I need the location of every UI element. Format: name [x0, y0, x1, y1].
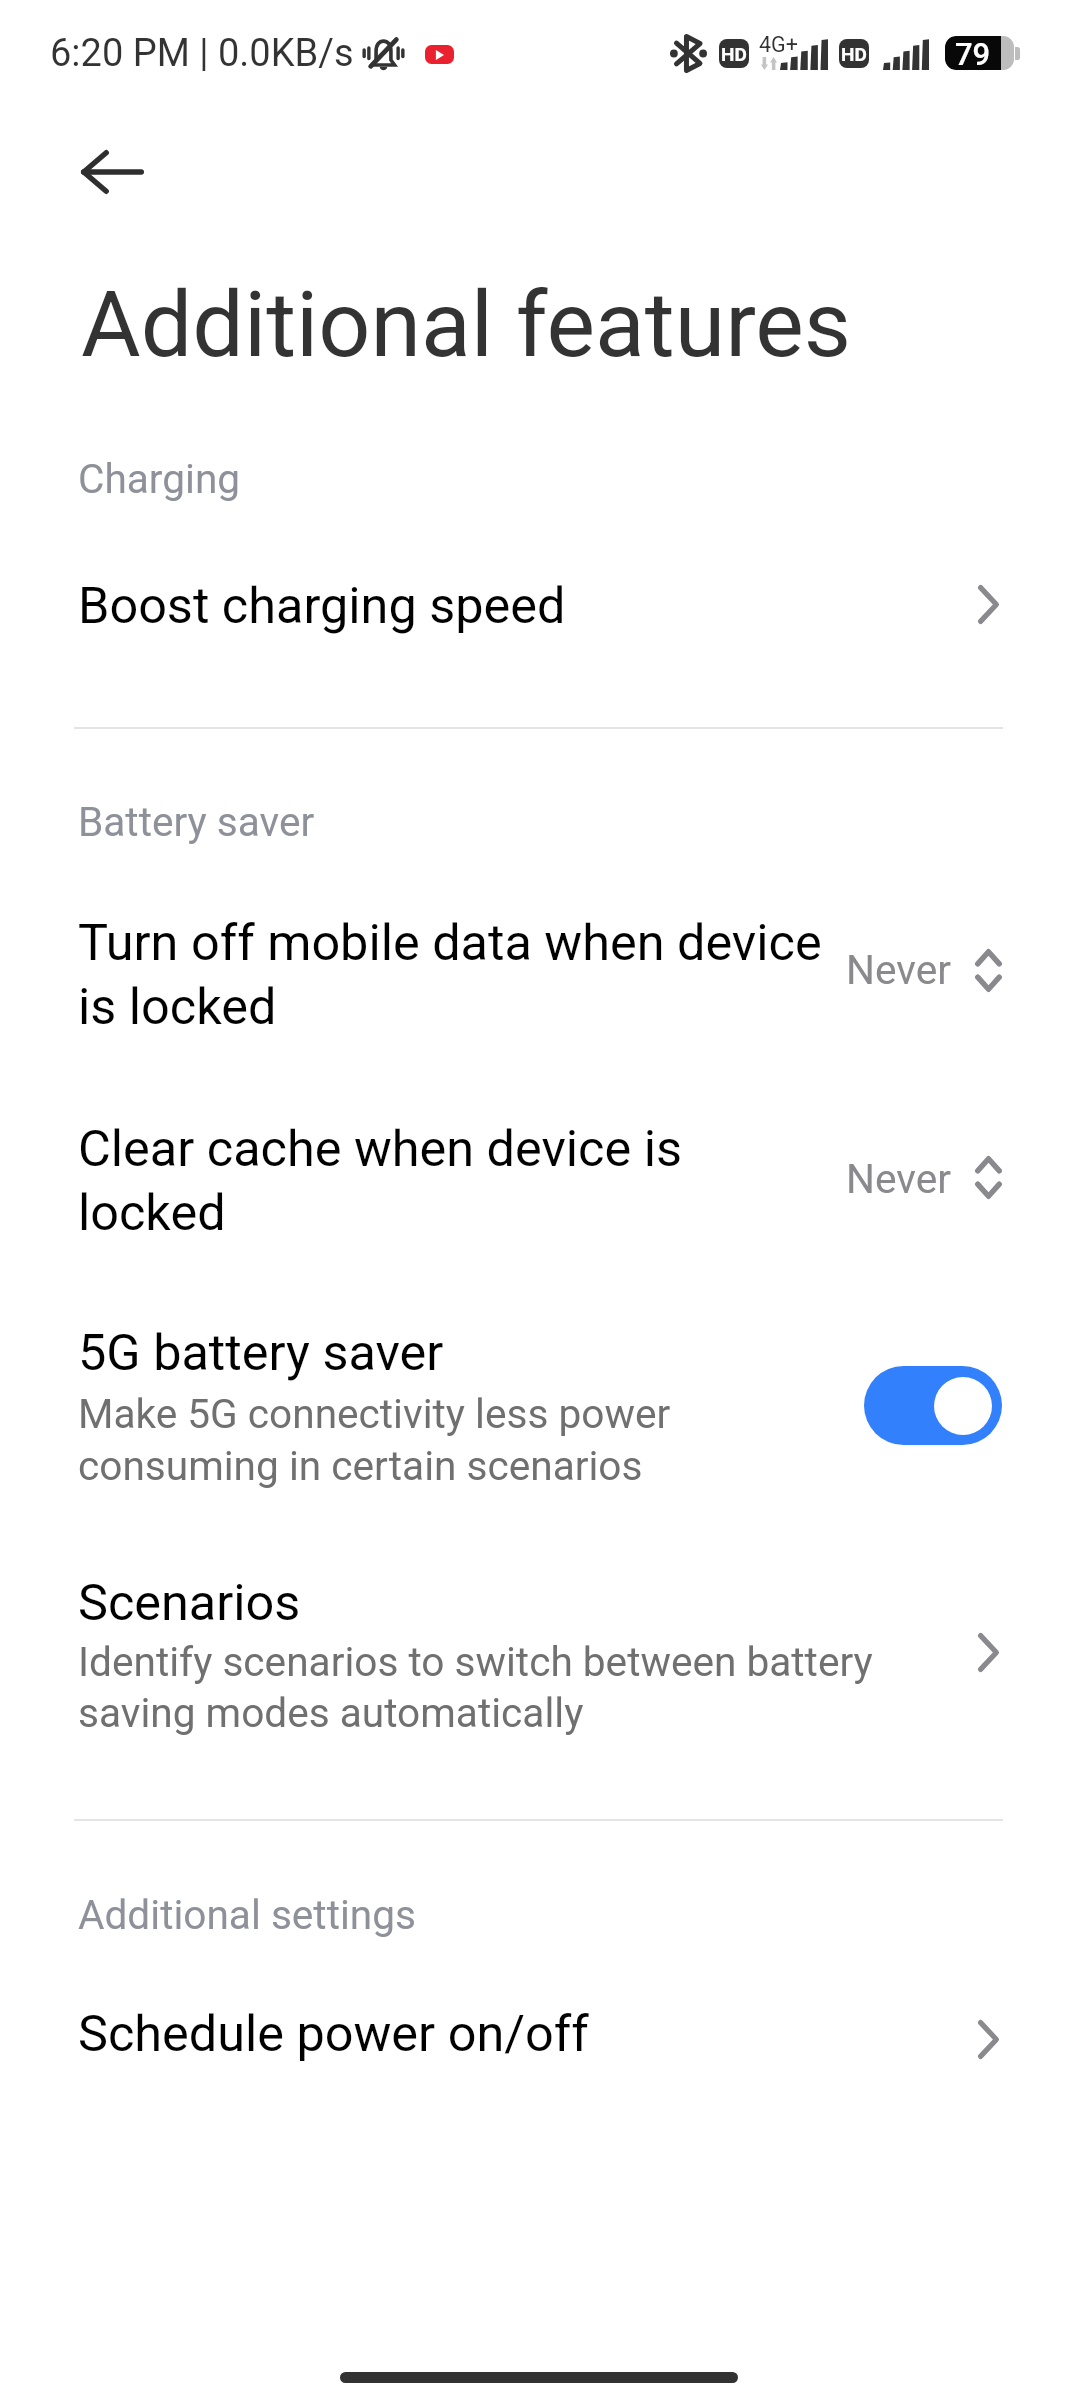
button[interactable]: 5G battery saver: [0, 1300, 1080, 1500]
staticText: Identify scenarios to switch between bat…: [78, 1635, 873, 1737]
button[interactable]: Schedule power on/off: [0, 1973, 1080, 2103]
staticText: Never: [846, 1155, 951, 1203]
staticText: Charging: [78, 455, 241, 503]
staticText: Scenarios: [78, 1573, 301, 1632]
staticText: 5G battery saver: [78, 1323, 444, 1382]
staticText: Battery saver: [78, 798, 315, 846]
staticText: 6:20 PM | 0.0KB/s: [50, 31, 354, 76]
staticText: Clear cache when device is locked: [78, 1115, 682, 1243]
staticText: Schedule power on/off: [78, 2004, 589, 2063]
staticText: Additional settings: [78, 1891, 416, 1939]
staticText: Make 5G connectivity less power consumin…: [78, 1387, 671, 1491]
staticText: HD: [841, 43, 867, 65]
button[interactable]: Turn off mobile data when device is lock…: [0, 880, 1080, 1058]
button[interactable]: Back: [62, 122, 162, 222]
button[interactable]: Boost charging speed: [0, 545, 1080, 675]
button[interactable]: Clear cache when device is locked: [0, 1086, 1080, 1264]
staticText: Additional features: [81, 271, 852, 378]
staticText: Never: [846, 946, 951, 994]
staticText: 4G+: [759, 32, 798, 57]
staticText: Turn off mobile data when device is lock…: [78, 909, 822, 1037]
button[interactable]: 5G battery saver, on: [864, 1366, 1002, 1445]
staticText: Boost charging speed: [78, 576, 566, 635]
button[interactable]: Scenarios: [0, 1550, 1080, 1750]
staticText: HD: [721, 43, 747, 65]
staticText: 79: [955, 36, 991, 70]
